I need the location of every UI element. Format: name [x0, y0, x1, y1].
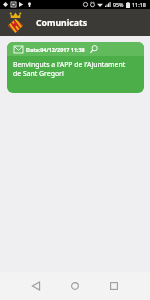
staticText: 11:18 [132, 1, 146, 8]
button[interactable]: Veure detall [90, 45, 98, 53]
staticText: Data:04/12/2017 11:38 [26, 46, 85, 53]
button[interactable]: Back [27, 277, 45, 295]
button[interactable]: Recent apps [105, 277, 123, 295]
staticText: Benvinguts a l'APP de l'Ajuntament de Sa… [13, 60, 126, 78]
other: Missatge [14, 46, 23, 53]
staticText: 95% [113, 1, 124, 8]
button[interactable]: Missatge [7, 42, 144, 93]
button[interactable]: Home [66, 277, 84, 295]
staticText: Comunicats [36, 17, 88, 29]
